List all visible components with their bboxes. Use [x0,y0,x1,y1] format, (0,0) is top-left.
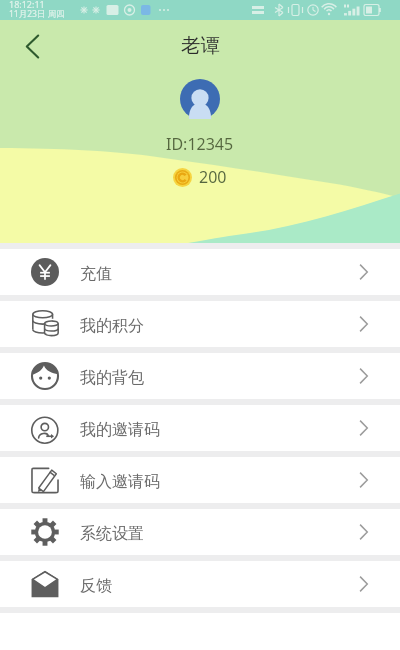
button[interactable]: 充值 [0,249,400,295]
staticText: 18:12:11 [9,0,45,10]
button[interactable]: 我的积分 [0,301,400,347]
button[interactable]: 我的邀请码 [0,405,400,451]
staticText: 200 [199,166,227,188]
button[interactable]: 我的背包 [0,353,400,399]
button[interactable]: 输入邀请码 [0,457,400,503]
staticText: 输入邀请码 [80,472,160,492]
staticText: 反馈 [80,576,112,596]
button[interactable]: 反馈 [0,561,400,607]
staticText: 我的邀请码 [80,420,160,440]
staticText: ID:12345 [166,133,234,155]
staticText: 我的积分 [80,316,144,336]
button[interactable]: Back [15,29,49,63]
staticText: 11月23日 周四 [9,8,65,20]
staticText: 系统设置 [80,524,144,544]
staticText: 充值 [80,264,112,284]
button[interactable]: 系统设置 [0,509,400,555]
staticText: 老谭 [181,33,220,58]
staticText: 我的背包 [80,368,144,388]
